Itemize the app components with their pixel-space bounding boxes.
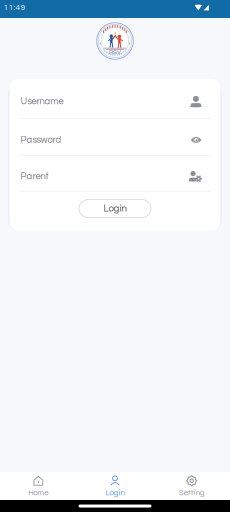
button[interactable]: Home <box>0 471 77 501</box>
staticText: Username <box>20 97 63 106</box>
staticText: 11:49 <box>3 3 25 12</box>
button[interactable]: Login <box>77 471 153 501</box>
staticText: Password <box>20 135 61 145</box>
staticText: Login <box>105 489 124 497</box>
staticText: Login <box>103 204 126 214</box>
staticText: Home <box>28 489 48 497</box>
staticText: Setting <box>179 489 205 497</box>
staticText: RSV <box>109 49 121 55</box>
button[interactable]: Username <box>9 79 220 119</box>
button[interactable]: Password <box>9 119 220 156</box>
button[interactable]: Parent <box>9 156 220 192</box>
button[interactable]: Login <box>79 200 151 218</box>
staticText: Parent <box>20 172 48 181</box>
button[interactable]: Setting <box>153 471 230 501</box>
